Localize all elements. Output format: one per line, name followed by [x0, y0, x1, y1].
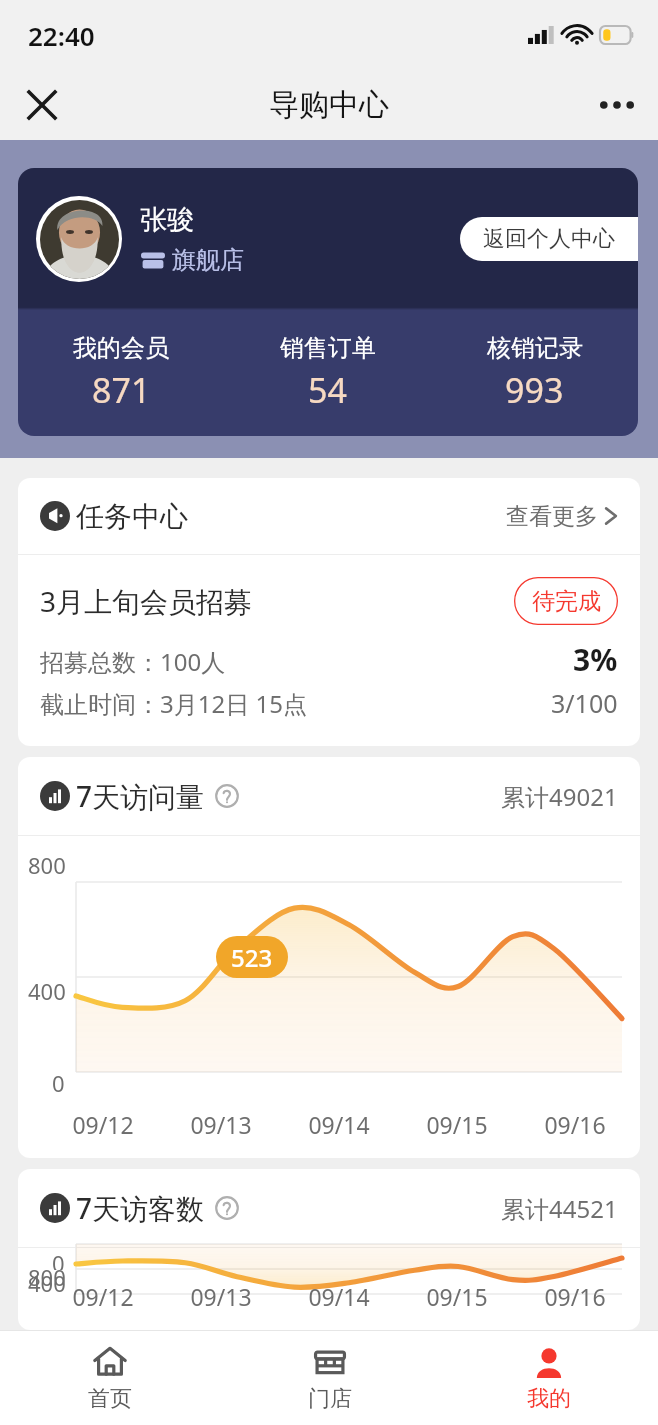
staticText: 查看更多: [506, 502, 598, 531]
staticText: 0: [52, 1248, 65, 1270]
staticText: 7天访问量: [76, 777, 205, 815]
staticText: 22:40: [28, 18, 95, 53]
staticText: 09/15: [426, 1281, 488, 1312]
staticText: 核销记录: [487, 333, 583, 363]
button[interactable]: Close: [16, 79, 68, 131]
staticText: 09/15: [426, 1109, 488, 1140]
staticText: 3%: [573, 639, 618, 680]
staticText: 09/13: [190, 1109, 252, 1140]
staticText: 招募总数：100人: [40, 645, 226, 678]
button[interactable]: 我的会员: [18, 333, 224, 413]
staticText: 400: [28, 1268, 66, 1298]
staticText: 待完成: [532, 587, 601, 616]
button[interactable]: More options: [590, 78, 644, 132]
staticText: 销售订单: [280, 333, 376, 363]
button[interactable]: 返回个人中心: [460, 217, 638, 261]
button[interactable]: 首页: [0, 1331, 220, 1425]
staticText: 截止时间：3月12日 15点: [40, 687, 307, 720]
staticText: 我的: [527, 1385, 571, 1413]
staticText: 09/12: [72, 1109, 134, 1140]
staticText: 09/12: [72, 1281, 134, 1312]
staticText: 导购中心: [269, 86, 389, 124]
staticText: 任务中心: [76, 499, 188, 534]
button[interactable]: 我的: [439, 1331, 658, 1425]
staticText: 523: [231, 941, 273, 974]
staticText: 09/14: [308, 1281, 370, 1312]
button[interactable]: 张骏: [18, 168, 638, 436]
staticText: 09/13: [190, 1281, 252, 1312]
staticText: 09/16: [544, 1281, 606, 1312]
staticText: 门店: [308, 1385, 352, 1413]
staticText: 我的会员: [73, 333, 169, 363]
staticText: 3/100: [551, 686, 618, 720]
staticText: 张骏: [140, 203, 194, 237]
other: Info: [215, 784, 239, 808]
staticText: 871: [92, 367, 151, 413]
other: Info: [215, 1196, 239, 1220]
button[interactable]: 任务中心: [18, 478, 640, 554]
button[interactable]: 销售订单: [224, 333, 431, 413]
staticText: 旗舰店: [172, 245, 244, 275]
staticText: 7天访客数: [76, 1189, 205, 1227]
staticText: 累计44521: [501, 1192, 618, 1225]
staticText: 09/16: [544, 1109, 606, 1140]
button[interactable]: 7天访客数: [18, 1169, 640, 1247]
staticText: 993: [505, 367, 564, 413]
staticText: 800: [28, 850, 66, 880]
button[interactable]: 3月上旬会员招募: [18, 555, 640, 746]
button[interactable]: 门店: [220, 1331, 439, 1425]
staticText: 800: [28, 1262, 66, 1292]
button[interactable]: 7天访问量: [18, 757, 640, 835]
button[interactable]: 核销记录: [431, 333, 638, 413]
staticText: 400: [28, 976, 66, 1006]
staticText: 首页: [88, 1385, 132, 1413]
staticText: 09/14: [308, 1109, 370, 1140]
staticText: 3月上旬会员招募: [40, 582, 253, 620]
staticText: 返回个人中心: [483, 225, 615, 253]
staticText: 0: [52, 1068, 65, 1098]
staticText: 54: [308, 367, 347, 413]
staticText: 累计49021: [501, 780, 618, 813]
